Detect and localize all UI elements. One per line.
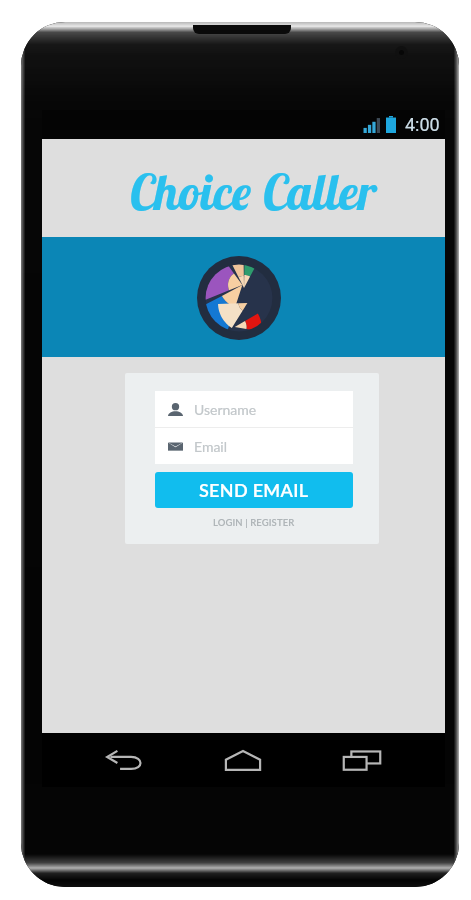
staticText: LOGIN | REGISTER (213, 517, 295, 528)
button[interactable]: SEND EMAIL (155, 472, 353, 508)
button[interactable]: LOGIN | REGISTER (209, 516, 299, 529)
button[interactable]: Back (87, 739, 163, 781)
staticText: Choice Caller (129, 161, 377, 222)
button[interactable]: Username (155, 391, 353, 427)
staticText: SEND EMAIL (199, 479, 309, 501)
staticText: Username (194, 401, 257, 418)
button[interactable]: Recent apps (324, 739, 400, 781)
button[interactable]: Home (205, 739, 281, 781)
staticText: 4:00 (405, 114, 440, 135)
button[interactable]: Email (155, 428, 353, 464)
staticText: Email (194, 438, 228, 455)
